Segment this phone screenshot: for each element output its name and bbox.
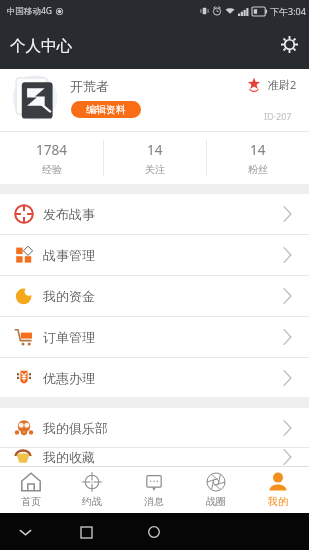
button[interactable]: 消息 [123,467,185,513]
button[interactable]: 14 [207,132,309,184]
staticText: 个人中心 [10,36,72,56]
button[interactable]: 编辑资料 [71,101,141,118]
button[interactable]: 战圈 [185,467,247,513]
button[interactable]: 战事管理 [0,235,309,276]
button[interactable]: Home [78,524,94,540]
staticText: 我的收藏 [43,449,95,465]
button[interactable]: Recents [146,524,162,540]
button[interactable]: 我的 [247,467,309,513]
staticText: 优惠办理 [43,370,95,386]
staticText: 订单管理 [43,329,95,345]
button[interactable]: 优惠办理 [0,358,309,397]
staticText: 开荒者 [70,78,109,94]
button[interactable]: 我的收藏 [0,448,309,466]
button[interactable]: Settings [277,32,301,56]
staticText: 下午3:04 [270,5,306,17]
staticText: 编辑资料 [86,103,126,116]
button[interactable]: 订单管理 [0,317,309,358]
staticText: 准尉2 [268,77,297,92]
staticText: 发布战事 [43,206,95,222]
staticText: 战事管理 [43,247,95,263]
button[interactable]: 14 [104,132,206,184]
staticText: 战圈 [206,495,226,508]
staticText: 首页 [21,495,41,508]
staticText: 我的 [268,495,288,508]
staticText: 经验 [42,163,62,176]
staticText: 我的资金 [43,288,95,304]
button[interactable]: Back [17,524,33,540]
staticText: 我的俱乐部 [43,420,108,436]
staticText: 消息 [144,495,164,508]
button[interactable]: 发布战事 [0,194,309,235]
staticText: 14 [147,141,163,159]
button[interactable]: 我的俱乐部 [0,408,309,448]
staticText: ID·207 [264,110,292,122]
button[interactable]: 我的资金 [0,276,309,317]
staticText: 约战 [82,495,102,508]
staticText: 关注 [145,163,165,176]
staticText: 中国移动4G [7,5,53,17]
staticText: 粉丝 [248,163,268,176]
staticText: 14 [250,141,266,159]
staticText: 1784 [36,141,67,159]
button[interactable]: 1784 [0,132,103,184]
button[interactable]: 首页 [0,467,61,513]
button[interactable]: 约战 [61,467,123,513]
